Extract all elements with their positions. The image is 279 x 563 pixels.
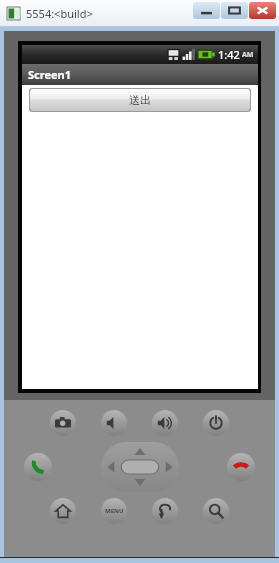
button[interactable]: Directional pad	[101, 442, 179, 492]
button[interactable]: Search	[203, 498, 229, 524]
staticText: 5554:<build>	[26, 6, 93, 21]
button[interactable]: End call	[227, 453, 255, 481]
button[interactable]: Window control	[193, 2, 220, 19]
button[interactable]: Window control	[249, 2, 276, 19]
button[interactable]: Volume down	[101, 410, 127, 436]
button[interactable]: Camera	[50, 410, 76, 436]
staticText: 送出	[129, 93, 151, 107]
button[interactable]: Power	[203, 410, 229, 436]
button[interactable]: Window control	[221, 2, 248, 19]
staticText: AM	[242, 50, 254, 60]
staticText: MENU	[105, 507, 124, 515]
button[interactable]: Call	[24, 453, 52, 481]
button[interactable]: Volume up	[152, 410, 178, 436]
staticText: 1:42	[218, 47, 240, 62]
button[interactable]: MENU	[101, 498, 127, 524]
button[interactable]: Back	[152, 498, 178, 524]
staticText: Screen1	[28, 67, 72, 82]
button[interactable]: 送出	[30, 89, 250, 111]
button[interactable]: Home	[50, 498, 76, 524]
